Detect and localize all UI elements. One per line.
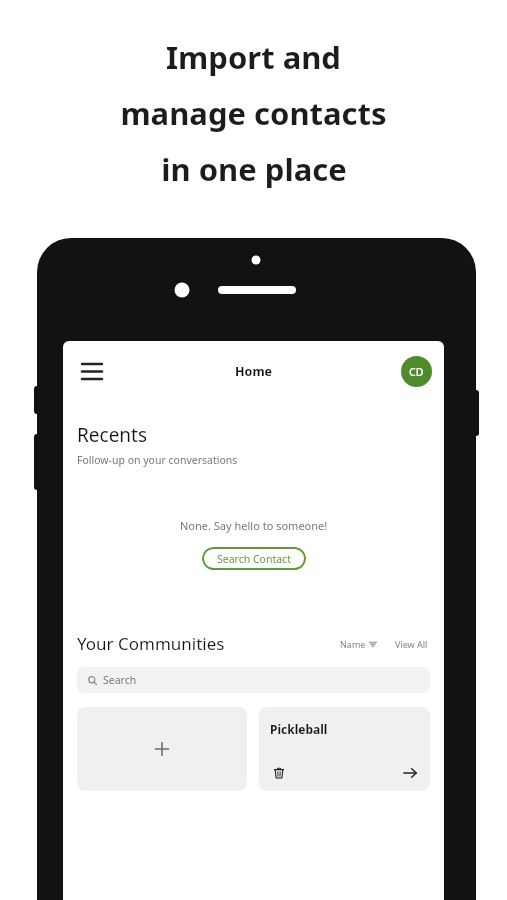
staticText: None. Say hello to someone! [180,518,328,533]
staticText: Import and [166,36,341,78]
button[interactable]: Search [77,667,430,693]
staticText: manage contacts [120,92,387,134]
staticText: Search [103,673,137,687]
staticText: Search Contact [217,552,291,566]
staticText: Home [235,363,273,380]
button[interactable]: Open [401,764,419,782]
staticText: Your Communities [77,632,225,655]
button[interactable]: Add community [77,707,247,791]
button[interactable]: Name [338,634,379,654]
staticText: CD [409,365,424,379]
button[interactable]: Delete [270,764,288,782]
staticText: Pickleball [270,721,328,737]
staticText: Follow-up on your conversations [77,453,238,467]
button[interactable]: CD [401,356,432,387]
button[interactable]: Search Contact [202,547,306,570]
staticText: Recents [77,422,148,448]
button[interactable]: Menu [74,353,110,389]
button[interactable]: View All [393,634,430,654]
staticText: Name [340,638,366,650]
button[interactable]: Pickleball [259,707,430,791]
staticText: in one place [161,148,347,190]
staticText: View All [395,638,428,650]
